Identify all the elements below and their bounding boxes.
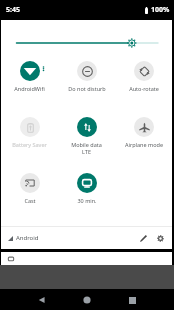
staticText: Do not disturb [68, 85, 106, 92]
button[interactable]: Battery Saver [1, 113, 58, 169]
staticText: Auto-rotate [129, 85, 159, 92]
button[interactable]: Back [32, 290, 52, 310]
button[interactable]: Do not disturb [58, 57, 115, 113]
staticText: Android [16, 234, 39, 242]
staticText: 100% [151, 5, 170, 15]
button[interactable]: Edit [136, 231, 150, 245]
staticText: 30 min. [77, 197, 97, 204]
staticText: LTE [82, 148, 91, 155]
staticText: Cast [24, 197, 36, 204]
staticText: Airplane mode [125, 141, 163, 148]
button[interactable]: 30 min. [58, 169, 115, 225]
button[interactable]: AndroidWifi [1, 57, 58, 113]
staticText: Battery Saver [12, 141, 47, 148]
button[interactable]: Settings [153, 231, 167, 245]
button[interactable]: Home [77, 290, 97, 310]
staticText: AndroidWifi [14, 85, 45, 92]
button[interactable]: Mobile data [58, 113, 115, 169]
staticText: 5:45 [6, 5, 20, 15]
button[interactable]: Brightness [1, 37, 172, 49]
button[interactable]: Recents [122, 290, 142, 310]
button[interactable]: Cast [1, 169, 58, 225]
staticText: Mobile data [71, 141, 102, 148]
button[interactable]: Airplane mode [115, 113, 172, 169]
button[interactable]: Auto-rotate [115, 57, 172, 113]
